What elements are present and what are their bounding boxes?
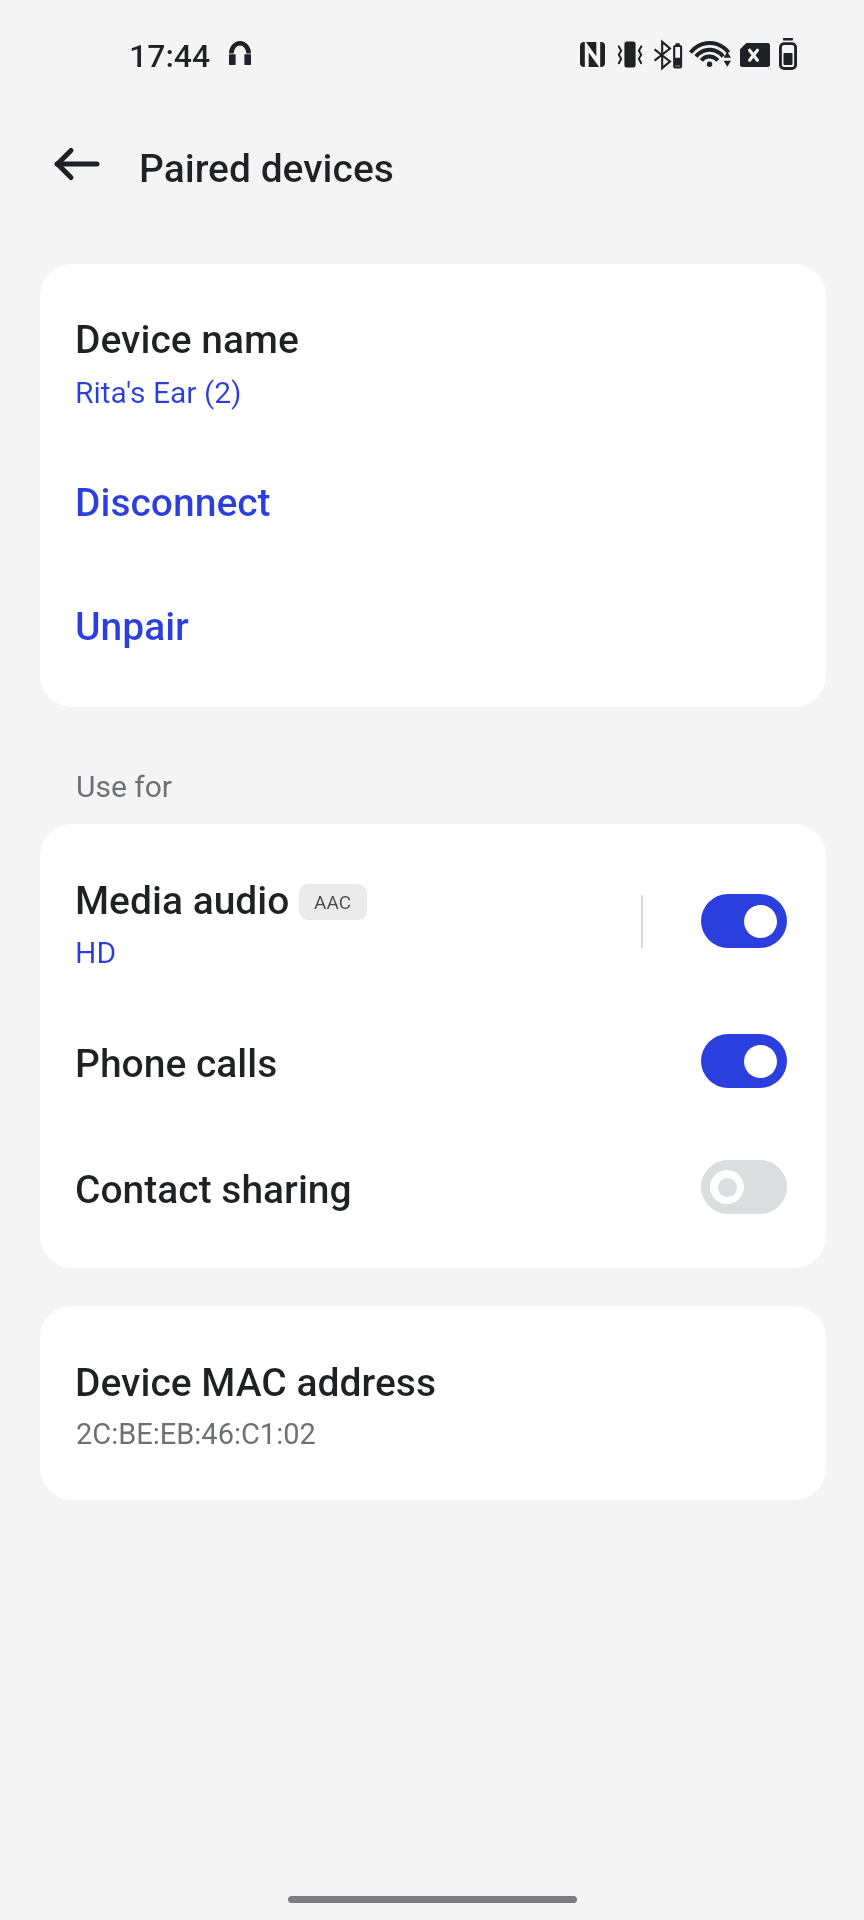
staticText: 2C:BE:EB:46:C1:02 — [76, 1417, 316, 1451]
staticText: Paired devices — [139, 146, 394, 192]
button[interactable]: Device MAC address — [40, 1339, 826, 1469]
staticText: AAC — [314, 891, 352, 913]
staticText: Disconnect — [75, 480, 271, 526]
staticText: HD — [75, 935, 117, 970]
staticText: Phone calls — [75, 1041, 278, 1087]
staticText: Contact sharing — [75, 1167, 352, 1213]
staticText: Unpair — [75, 604, 189, 650]
button[interactable]: Phone calls — [40, 1023, 826, 1103]
staticText: Media audio — [75, 878, 290, 924]
staticText: Use for — [76, 769, 172, 804]
button[interactable]: Media audio — [40, 868, 826, 988]
button[interactable]: Switch on — [701, 1034, 787, 1088]
button[interactable]: Unpair — [40, 591, 826, 663]
staticText: Device name — [75, 317, 299, 363]
button[interactable]: Back — [36, 124, 116, 204]
staticText: Device MAC address — [75, 1360, 436, 1406]
button[interactable]: Disconnect — [40, 467, 826, 539]
button[interactable]: Device name — [40, 296, 826, 426]
staticText: 17:44 — [129, 37, 211, 75]
staticText: Rita's Ear (2) — [75, 375, 242, 410]
button[interactable]: Switch off — [701, 1160, 787, 1214]
button[interactable]: Contact sharing — [40, 1149, 826, 1229]
button[interactable]: Switch on — [701, 894, 787, 948]
